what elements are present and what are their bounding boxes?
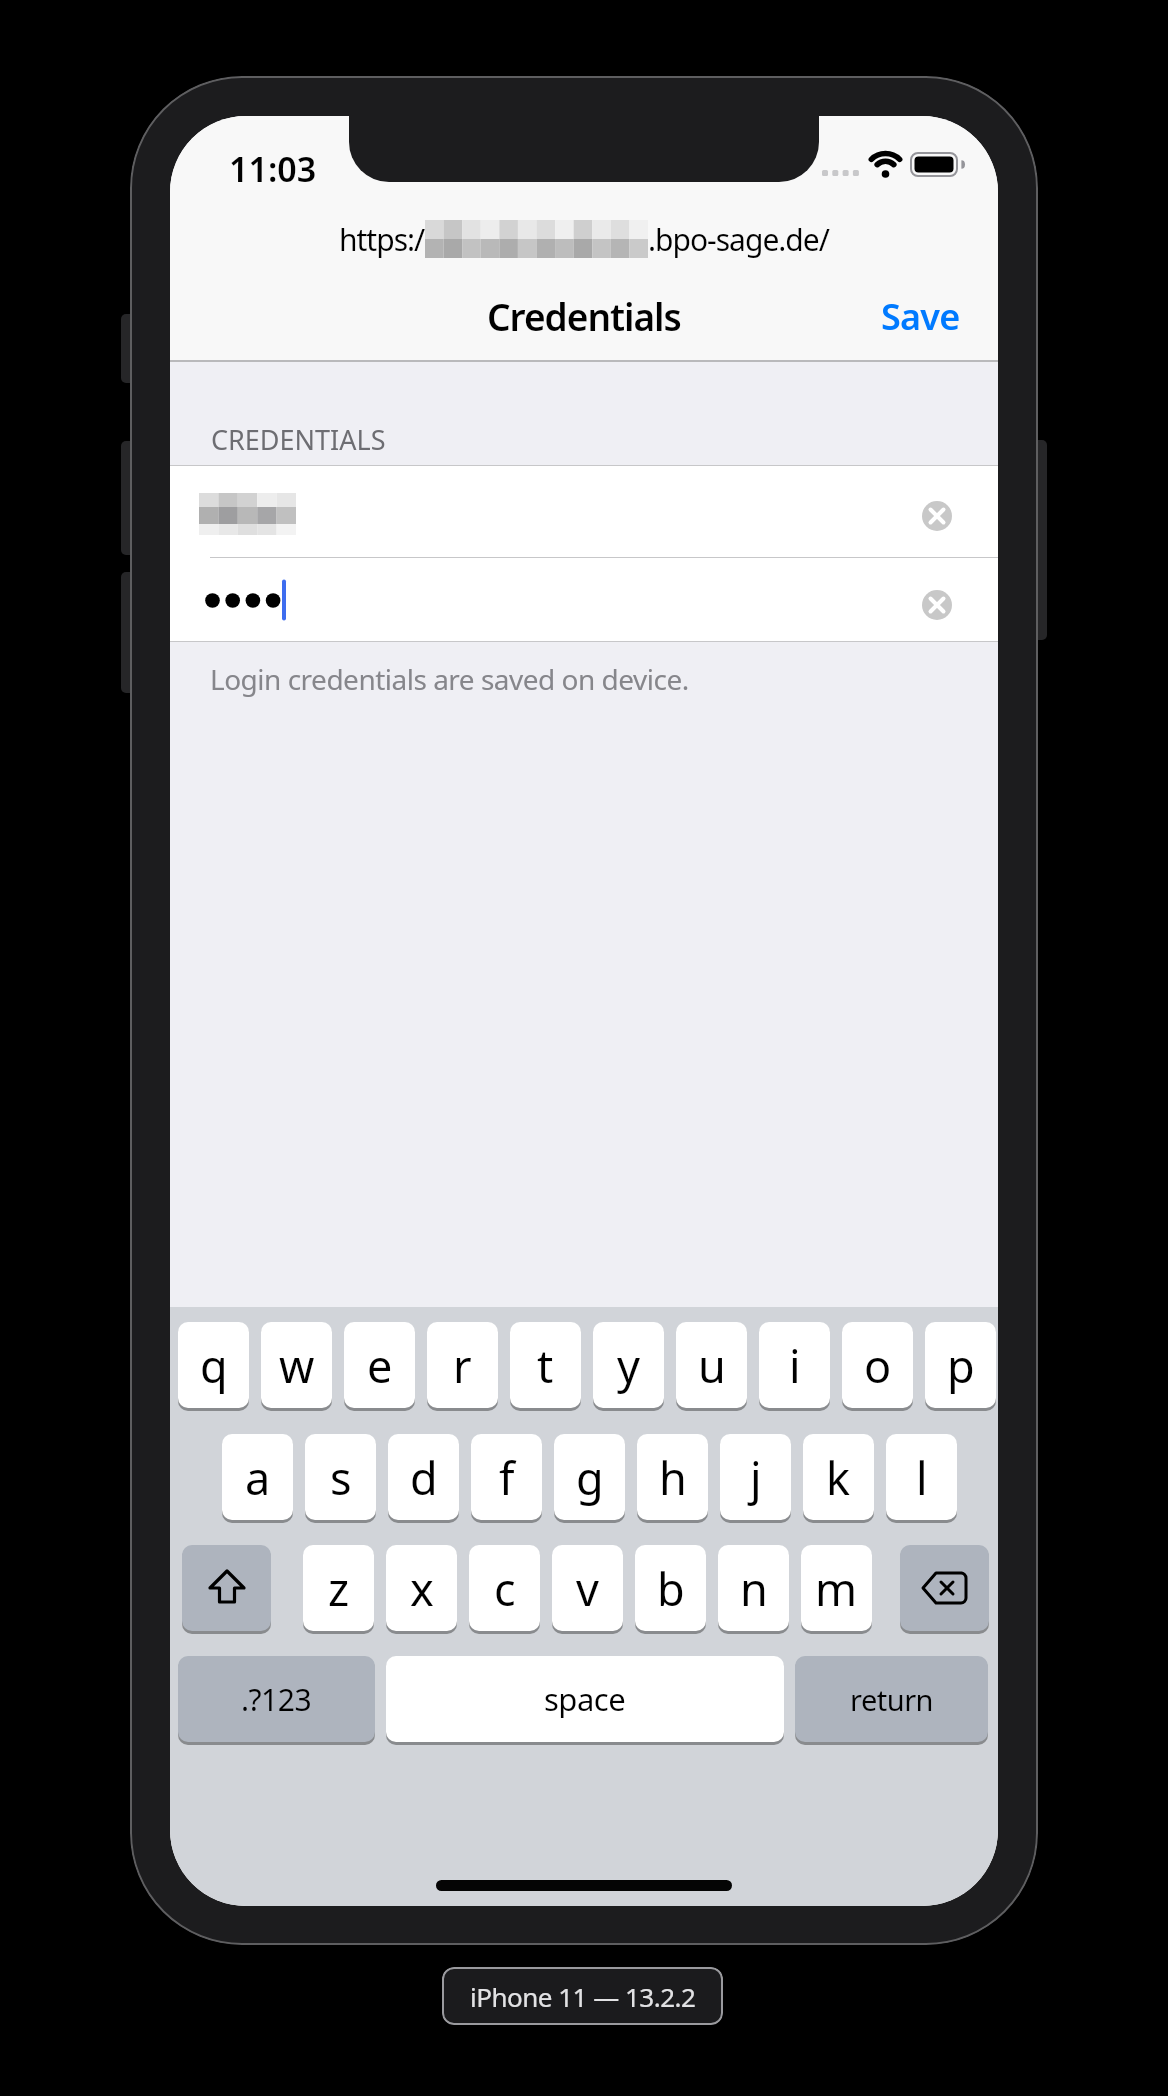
staticText: l (916, 1447, 928, 1508)
staticText: 11:03 (229, 146, 317, 184)
button[interactable] (182, 1545, 271, 1631)
button[interactable] (170, 558, 998, 641)
button[interactable]: u (676, 1322, 747, 1408)
button[interactable]: iPhone 11 — 13.2.2 (442, 1967, 723, 2025)
staticText: .bpo-sage.de/ (648, 219, 829, 260)
button[interactable]: i (759, 1322, 830, 1408)
staticText: https:/ (339, 219, 425, 260)
staticText: b (657, 1558, 685, 1619)
staticText: t (537, 1335, 554, 1396)
button[interactable]: v (552, 1545, 623, 1631)
staticText: k (826, 1447, 851, 1508)
staticText: a (245, 1447, 271, 1508)
staticText: s (330, 1447, 352, 1508)
button[interactable]: s (305, 1434, 376, 1520)
staticText: h (659, 1447, 687, 1508)
button[interactable]: n (718, 1545, 789, 1631)
button[interactable]: e (344, 1322, 415, 1408)
staticText: CREDENTIALS (211, 421, 386, 457)
staticText: w (279, 1335, 315, 1396)
staticText: n (740, 1558, 768, 1619)
staticText: f (499, 1447, 515, 1508)
button[interactable]: m (801, 1545, 872, 1631)
button[interactable]: a (222, 1434, 293, 1520)
button[interactable]: j (720, 1434, 791, 1520)
staticText: o (864, 1335, 892, 1396)
staticText: r (453, 1335, 472, 1396)
staticText: u (698, 1335, 726, 1396)
button[interactable]: c (469, 1545, 540, 1631)
button[interactable]: p (925, 1322, 996, 1408)
staticText: d (410, 1447, 438, 1508)
staticText: .?123 (241, 1679, 312, 1720)
button[interactable]: .?123 (178, 1656, 375, 1742)
button[interactable]: x (386, 1545, 457, 1631)
staticText: z (328, 1558, 350, 1619)
button[interactable]: r (427, 1322, 498, 1408)
button[interactable]: w (261, 1322, 332, 1408)
staticText: return (850, 1680, 934, 1719)
staticText: v (576, 1558, 599, 1619)
button[interactable]: Save (830, 288, 960, 344)
button[interactable]: return (795, 1656, 988, 1742)
staticText: Save (881, 292, 960, 341)
button[interactable]: k (803, 1434, 874, 1520)
button[interactable]: o (842, 1322, 913, 1408)
staticText: i (789, 1335, 801, 1396)
staticText: c (494, 1558, 516, 1619)
staticText: Login credentials are saved on device. (210, 660, 689, 698)
button[interactable]: f (471, 1434, 542, 1520)
staticText: m (815, 1558, 858, 1619)
button[interactable]: y (593, 1322, 664, 1408)
staticText: y (617, 1335, 640, 1396)
button[interactable]: q (178, 1322, 249, 1408)
staticText: q (200, 1335, 228, 1396)
button[interactable]: g (554, 1434, 625, 1520)
staticText: x (410, 1558, 434, 1619)
button[interactable]: l (886, 1434, 957, 1520)
button[interactable]: t (510, 1322, 581, 1408)
button[interactable]: b (635, 1545, 706, 1631)
button[interactable]: z (303, 1545, 374, 1631)
staticText: Credentials (487, 291, 681, 341)
button[interactable] (922, 501, 952, 531)
staticText: j (750, 1447, 762, 1508)
button[interactable]: d (388, 1434, 459, 1520)
button[interactable] (170, 466, 998, 557)
staticText: e (367, 1335, 393, 1396)
staticText: g (576, 1447, 604, 1508)
staticText: space (544, 1678, 626, 1720)
button[interactable]: space (386, 1656, 784, 1742)
button[interactable] (922, 590, 952, 620)
staticText: p (947, 1335, 975, 1396)
button[interactable] (900, 1545, 989, 1631)
staticText: iPhone 11 — 13.2.2 (470, 1979, 696, 2014)
button[interactable]: h (637, 1434, 708, 1520)
